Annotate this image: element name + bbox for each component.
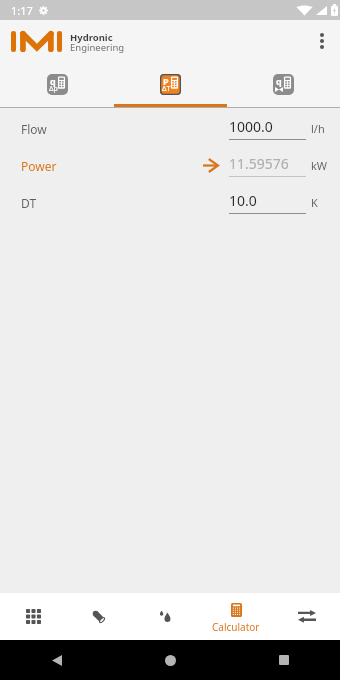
staticText: Hydronic <box>70 31 113 44</box>
staticText: 1:17 <box>11 3 33 18</box>
button[interactable]: Recents <box>227 640 340 680</box>
staticText: Calculator <box>212 620 260 634</box>
staticText: Δp <box>49 84 58 94</box>
staticText: 11.59576 <box>229 154 289 173</box>
staticText: K <box>311 195 318 210</box>
staticText: l/h <box>311 121 325 136</box>
button[interactable]: Home <box>114 640 227 680</box>
button[interactable]: P delta T <box>114 62 227 106</box>
button[interactable]: Back <box>0 640 114 680</box>
staticText: DT <box>21 195 37 211</box>
staticText: ΔT <box>162 84 171 94</box>
button[interactable]: Compare <box>274 593 340 640</box>
button[interactable]: q valve <box>227 62 340 106</box>
staticText: Power <box>21 158 57 174</box>
button[interactable]: Flow <box>0 110 340 147</box>
button[interactable]: More options <box>305 24 339 58</box>
button[interactable]: Fluids <box>132 593 198 640</box>
button[interactable]: Calculator <box>198 593 274 640</box>
button[interactable]: Products <box>0 593 66 640</box>
button[interactable]: Pipe <box>66 593 132 640</box>
button[interactable]: Power <box>0 147 340 184</box>
staticText: P <box>163 75 169 87</box>
button[interactable]: q delta p <box>0 62 114 106</box>
staticText: q <box>50 75 56 87</box>
staticText: kW <box>311 158 328 173</box>
staticText: 1000.0 <box>229 117 273 136</box>
staticText: Engineering <box>70 41 125 54</box>
staticText: 10.0 <box>229 191 257 210</box>
button[interactable]: DT <box>0 184 340 221</box>
staticText: Flow <box>21 121 47 137</box>
staticText: q <box>276 75 282 87</box>
